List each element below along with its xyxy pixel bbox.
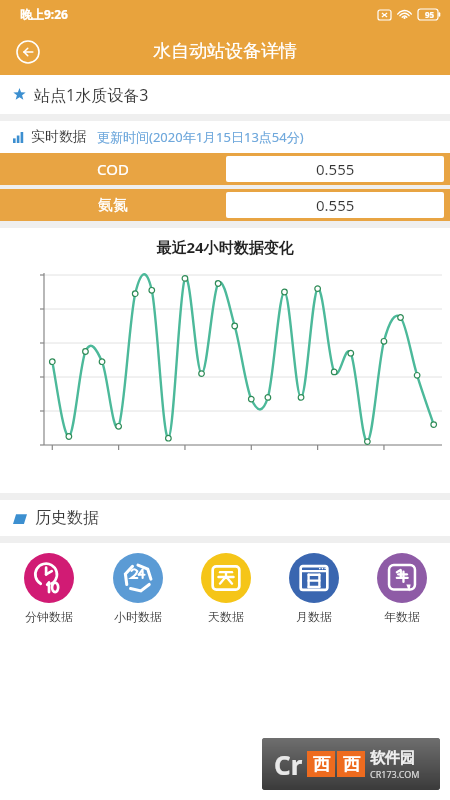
staticText: 西 bbox=[343, 754, 360, 775]
button[interactable]: 分钟数据 bbox=[4, 543, 93, 633]
staticText: 天数据 bbox=[208, 609, 244, 624]
staticText: 0.555 bbox=[316, 195, 355, 215]
button[interactable]: 年数据 bbox=[358, 543, 446, 633]
button[interactable]: 氨氮 bbox=[0, 189, 450, 221]
staticText: 氨氮 bbox=[98, 196, 128, 215]
staticText: CR173.COM bbox=[370, 768, 420, 780]
button[interactable]: COD bbox=[0, 153, 450, 185]
staticText: 月数据 bbox=[296, 609, 332, 624]
staticText: 95 bbox=[425, 9, 435, 20]
staticText: 小时数据 bbox=[114, 609, 162, 624]
staticText: 年数据 bbox=[384, 609, 420, 624]
button[interactable]: 天数据 bbox=[182, 543, 270, 633]
button[interactable]: 月数据 bbox=[270, 543, 358, 633]
staticText: 站点1水质设备3 bbox=[34, 84, 149, 106]
staticText: 更新时间(2020年1月15日13点54分) bbox=[97, 128, 304, 146]
button[interactable]: 小时数据 bbox=[93, 543, 182, 633]
staticText: 西 bbox=[313, 754, 330, 775]
staticText: 最近24小时数据变化 bbox=[0, 237, 450, 257]
staticText: Cr bbox=[274, 747, 303, 782]
staticText: 0.555 bbox=[316, 159, 355, 179]
staticText: 晚上9:26 bbox=[20, 6, 68, 22]
staticText: 实时数据 bbox=[31, 128, 87, 146]
staticText: COD bbox=[97, 159, 129, 179]
staticText: 软件园 bbox=[370, 749, 415, 768]
staticText: 历史数据 bbox=[35, 508, 99, 528]
staticText: 分钟数据 bbox=[25, 609, 73, 624]
button[interactable]: Back bbox=[8, 32, 48, 72]
staticText: 水自动站设备详情 bbox=[153, 40, 297, 63]
